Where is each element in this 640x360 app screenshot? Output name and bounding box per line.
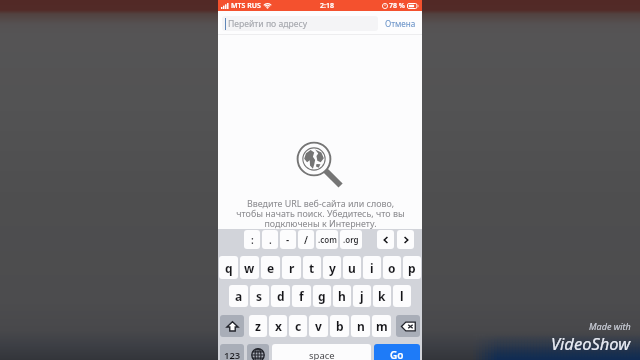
button[interactable]: c (289, 315, 307, 337)
button[interactable]: v (309, 315, 328, 337)
staticText: f (299, 288, 304, 304)
button[interactable]: e (261, 256, 280, 279)
staticText: / (304, 233, 308, 247)
staticText: c (295, 318, 302, 334)
staticText: b (336, 318, 344, 334)
button[interactable]: Next field (397, 230, 414, 249)
button[interactable]: t (303, 256, 321, 279)
staticText: g (318, 288, 326, 304)
staticText: m (376, 318, 388, 334)
staticText: .com (318, 234, 337, 245)
staticText: k (378, 288, 386, 304)
button[interactable]: h (333, 285, 351, 307)
staticText: u (348, 260, 356, 276)
button[interactable]: u (343, 256, 361, 279)
staticText: x (275, 318, 282, 334)
button[interactable]: . (262, 230, 278, 249)
staticText: Отмена (385, 18, 416, 29)
button[interactable]: i (363, 256, 381, 279)
button[interactable]: - (280, 230, 296, 249)
button[interactable]: b (330, 315, 349, 337)
staticText: o (388, 260, 396, 276)
staticText: d (277, 288, 285, 304)
button[interactable]: l (393, 285, 411, 307)
staticText: Made with (589, 320, 631, 332)
button[interactable]: n (351, 315, 370, 337)
staticText: j (360, 288, 364, 304)
staticText: w (244, 260, 255, 276)
button[interactable]: Go (374, 344, 420, 360)
button[interactable]: x (269, 315, 287, 337)
button[interactable]: Backspace (396, 315, 420, 337)
button[interactable]: j (353, 285, 371, 307)
button[interactable]: Перейти по адресу (222, 16, 378, 31)
button[interactable]: Previous field (377, 230, 394, 249)
staticText: MTS RUS (231, 1, 261, 11)
staticText: .org (343, 234, 359, 245)
button[interactable]: : (244, 230, 260, 249)
staticText: p (408, 260, 416, 276)
staticText: Go (390, 348, 404, 360)
staticText: : (251, 233, 254, 247)
button[interactable]: d (271, 285, 290, 307)
button[interactable]: f (292, 285, 311, 307)
staticText: z (255, 318, 261, 334)
staticText: r (289, 260, 295, 276)
button[interactable]: .com (316, 230, 338, 249)
staticText: n (357, 318, 365, 334)
staticText: VideoShow (551, 332, 631, 354)
button[interactable]: s (250, 285, 269, 307)
button[interactable]: space (272, 344, 371, 360)
button[interactable]: p (403, 256, 421, 279)
button[interactable]: q (219, 256, 238, 279)
staticText: h (338, 288, 346, 304)
button[interactable]: y (323, 256, 341, 279)
button[interactable]: g (313, 285, 331, 307)
staticText: Введите URL веб-сайта или слово, чтобы н… (236, 197, 405, 229)
staticText: Перейти по адресу (228, 18, 308, 30)
button[interactable]: 123 (220, 344, 244, 360)
button[interactable]: m (372, 315, 391, 337)
staticText: 123 (224, 349, 241, 360)
button[interactable]: Shift (220, 315, 244, 337)
staticText: a (235, 288, 243, 304)
button[interactable]: a (229, 285, 248, 307)
button[interactable]: k (373, 285, 391, 307)
button[interactable]: Change keyboard language (247, 344, 269, 360)
staticText: l (400, 288, 404, 304)
staticText: s (256, 288, 263, 304)
button[interactable]: o (383, 256, 401, 279)
staticText: v (315, 318, 322, 334)
staticText: . (269, 233, 272, 247)
staticText: t (309, 260, 315, 276)
button[interactable]: .org (340, 230, 362, 249)
button[interactable]: r (282, 256, 301, 279)
staticText: q (225, 260, 233, 276)
staticText: 78 % (389, 1, 405, 11)
button[interactable]: / (298, 230, 314, 249)
button[interactable]: w (240, 256, 259, 279)
staticText: - (286, 233, 290, 247)
staticText: y (329, 260, 336, 276)
button[interactable]: Отмена (385, 18, 416, 29)
button[interactable]: z (249, 315, 267, 337)
staticText: space (309, 349, 335, 360)
staticText: i (370, 260, 374, 276)
staticText: e (267, 260, 275, 276)
staticText: 2:18 (320, 1, 334, 11)
